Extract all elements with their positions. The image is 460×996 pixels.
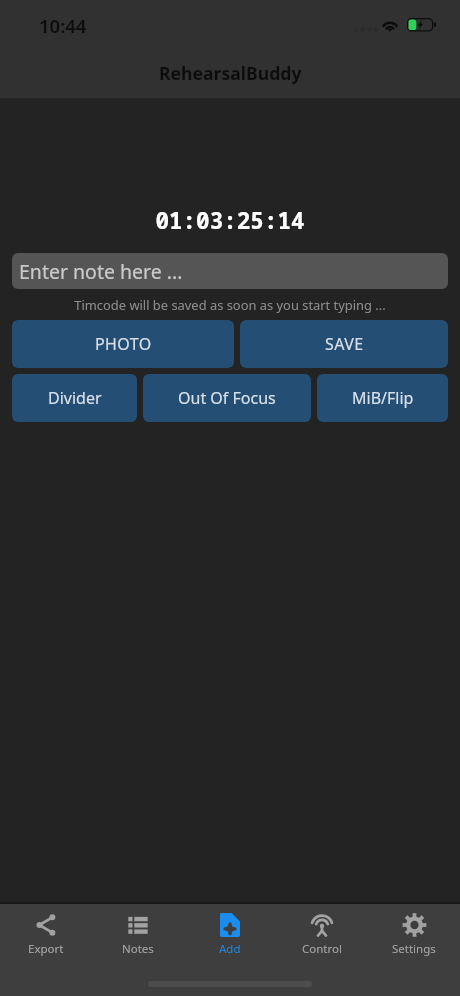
staticText: 10:44 <box>39 13 87 38</box>
button[interactable]: Out Of Focus <box>143 374 311 422</box>
button[interactable]: PHOTO <box>12 320 234 368</box>
staticText: 01:03:25:14 <box>0 205 460 236</box>
staticText: Export <box>28 941 64 957</box>
staticText: Divider <box>48 387 102 409</box>
staticText: PHOTO <box>95 333 152 355</box>
staticText: RehearsalBuddy <box>159 61 302 85</box>
button[interactable]: Add <box>184 902 276 996</box>
button[interactable]: Settings <box>368 902 460 996</box>
staticText: Notes <box>122 941 154 957</box>
staticText: SAVE <box>325 333 364 355</box>
staticText: Add <box>219 941 241 957</box>
button[interactable]: MiB/Flip <box>317 374 448 422</box>
button[interactable]: SAVE <box>240 320 448 368</box>
staticText: MiB/Flip <box>352 387 414 409</box>
staticText: Timcode will be saved as soon as you sta… <box>0 296 460 314</box>
staticText: Enter note here ... <box>19 258 183 285</box>
staticText: Out Of Focus <box>178 387 276 409</box>
staticText: Settings <box>392 941 436 957</box>
button[interactable]: Divider <box>12 374 137 422</box>
button[interactable]: Notes <box>92 902 184 996</box>
button[interactable]: Enter note here ... <box>12 253 448 289</box>
button[interactable]: Export <box>0 902 92 996</box>
button[interactable]: Control <box>276 902 368 996</box>
staticText: Control <box>302 941 342 957</box>
